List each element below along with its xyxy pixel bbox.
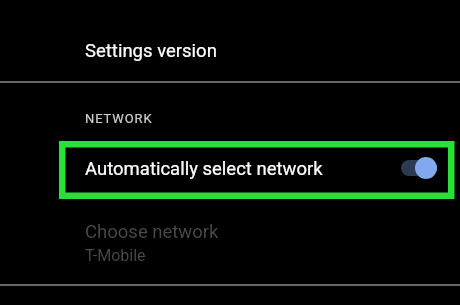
button[interactable]: Choose network [0, 215, 460, 284]
button[interactable]: Settings version [0, 0, 460, 81]
button[interactable]: Automatically select network toggle [395, 146, 443, 190]
staticText: Automatically select network [85, 158, 323, 180]
button[interactable]: Automatically select network [0, 141, 460, 199]
staticText: NETWORK [85, 111, 153, 126]
staticText: Settings version [85, 40, 217, 62]
staticText: Choose network [85, 221, 219, 243]
staticText: T-Mobile [85, 246, 146, 265]
